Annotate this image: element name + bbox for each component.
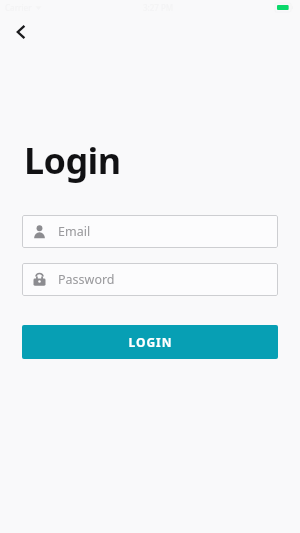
staticText: Login <box>24 136 121 185</box>
staticText: Email <box>58 223 91 240</box>
button[interactable]: Password <box>22 263 278 296</box>
button[interactable]: Email <box>22 215 278 248</box>
button[interactable]: LOGIN <box>22 325 278 359</box>
button[interactable]: Back <box>8 19 34 45</box>
staticText: Password <box>58 271 115 288</box>
staticText: LOGIN <box>128 334 173 350</box>
